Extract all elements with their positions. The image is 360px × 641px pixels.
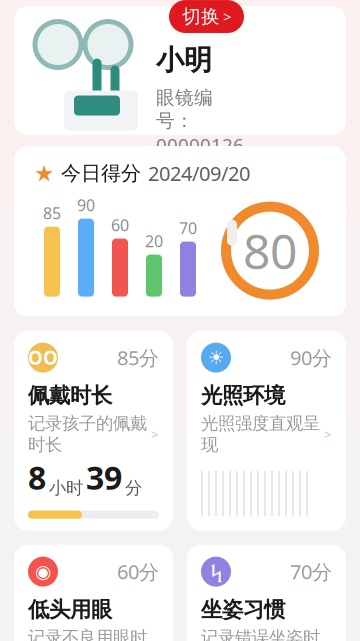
staticText: 低头用眼 — [28, 597, 112, 623]
staticText: 记录孩子的佩戴时长 — [28, 413, 147, 455]
staticText: ◉ — [35, 561, 51, 582]
staticText: 2024/09/20 — [148, 160, 250, 187]
staticText: 80 — [243, 219, 297, 282]
staticText: 8 — [28, 456, 46, 499]
staticText: 记录不良用眼时长 — [28, 627, 147, 641]
staticText: 小明 — [156, 43, 212, 77]
staticText: 光照强度直观呈现 — [201, 413, 320, 455]
button[interactable]: ☀ — [187, 331, 346, 531]
staticText: > — [223, 7, 231, 26]
staticText: 60分 — [117, 558, 159, 585]
staticText: 85分 — [117, 344, 159, 371]
staticText: 小时 — [49, 477, 83, 499]
staticText: > — [324, 425, 332, 443]
staticText: 90分 — [290, 344, 332, 371]
button[interactable]: 切换 — [14, 6, 346, 135]
staticText: 60 — [111, 214, 129, 236]
staticText: 85 — [43, 202, 61, 224]
staticText: 切换 — [182, 5, 220, 28]
button[interactable]: OO — [14, 331, 173, 531]
staticText: 记录错误坐姿时长 — [201, 627, 320, 641]
staticText: 70分 — [290, 558, 332, 585]
staticText: 分 — [125, 477, 142, 499]
button[interactable]: ᛋ — [187, 545, 346, 641]
staticText: OO — [28, 345, 58, 370]
staticText: ☀ — [207, 347, 224, 368]
staticText: ★ — [34, 160, 54, 186]
button[interactable]: ◉ — [14, 545, 173, 641]
staticText: 70 — [179, 217, 197, 239]
staticText: 坐姿习惯 — [201, 597, 285, 623]
staticText: 90 — [77, 194, 95, 216]
staticText: ᛋ — [210, 560, 221, 583]
staticText: 20 — [145, 230, 163, 252]
staticText: > — [151, 425, 159, 443]
staticText: 光照环境 — [201, 383, 285, 409]
staticText: 佩戴时长 — [28, 383, 112, 409]
staticText: 眼镜编号：00000126 — [156, 86, 244, 157]
staticText: 今日得分 — [61, 161, 141, 186]
staticText: 39 — [86, 456, 122, 499]
